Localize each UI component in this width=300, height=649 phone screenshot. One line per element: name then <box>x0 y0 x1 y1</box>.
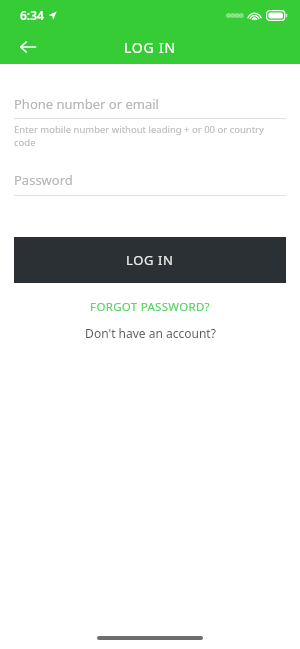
button[interactable]: LOG IN <box>14 237 286 283</box>
staticText: LOG IN <box>126 251 174 269</box>
staticText: Don't have an account? <box>85 325 216 341</box>
button[interactable]: Don't have an account? <box>75 322 226 344</box>
staticText: LOG IN <box>124 38 177 57</box>
staticText: Phone number or email <box>14 95 159 113</box>
staticText: Enter mobile number without leading + or… <box>14 123 286 149</box>
staticText: FORGOT PASSWORD? <box>90 299 210 315</box>
staticText: Password <box>14 171 73 189</box>
button[interactable]: Back <box>10 30 46 64</box>
button[interactable]: Password <box>0 171 300 196</box>
button[interactable]: FORGOT PASSWORD? <box>80 296 220 318</box>
staticText: 6:34 <box>20 7 44 23</box>
button[interactable]: Phone number or email <box>0 95 300 119</box>
